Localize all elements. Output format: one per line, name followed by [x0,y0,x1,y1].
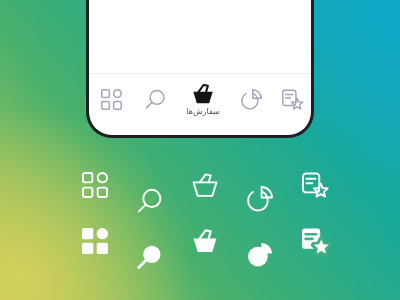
button[interactable]: SEARCH outline [133,184,167,218]
button[interactable]: Favourites [273,77,311,121]
button[interactable]: CATEGORY filled [78,224,112,258]
button[interactable]: DOCSTAR filled [298,224,332,258]
button[interactable]: CATEGORY outline [78,168,112,202]
button[interactable]: BASKET filled [188,224,222,258]
button[interactable]: DOCSTAR outline [298,168,332,202]
button[interactable]: SEARCH filled [133,240,167,274]
button[interactable]: Reports [229,77,273,121]
button[interactable]: Categories [89,77,133,121]
button[interactable]: Search [133,77,177,121]
button[interactable]: PIE outline [243,182,277,216]
button[interactable]: BASKET outline [188,168,222,202]
button[interactable]: PIE filled [243,238,277,272]
staticText: سفارش‌ها [186,107,220,116]
button[interactable]: سفارش‌ها [177,81,229,116]
